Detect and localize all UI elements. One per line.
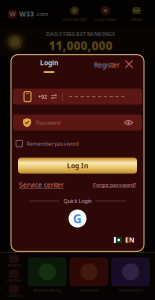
staticText: Password (36, 119, 60, 126)
button[interactable]: Money Coming (28, 257, 67, 293)
button[interactable]: Change country code (51, 94, 57, 100)
staticText: EN (125, 235, 134, 244)
button[interactable]: Rebate (121, 6, 152, 22)
button[interactable]: SPORTS (0, 254, 28, 268)
button[interactable]: Super Ace (70, 257, 108, 293)
button[interactable]: FISHING (0, 269, 28, 283)
staticText: .com (36, 10, 48, 18)
staticText: Remember password (26, 140, 78, 147)
button[interactable]: Service center (19, 181, 64, 189)
staticText: Rebate (131, 17, 142, 22)
staticText: G (73, 211, 82, 226)
staticText: Login (40, 58, 58, 67)
staticText: W33 (19, 10, 34, 18)
staticText: Log In (67, 161, 88, 170)
button[interactable]: Forgot password? (93, 181, 136, 189)
staticText: Money Coming (34, 287, 61, 293)
button[interactable]: Lucky wheel (90, 6, 121, 22)
button[interactable]: Show password (124, 120, 133, 126)
button[interactable]: CASINO (0, 284, 28, 298)
staticText: 11,000,000 (48, 38, 112, 53)
button[interactable]: Close (123, 55, 135, 79)
staticText: Live Chat 24/7 (62, 17, 86, 22)
staticText: Super Ace (80, 287, 98, 293)
button[interactable]: EN (114, 235, 134, 244)
button[interactable]: Fortune Gems (111, 257, 150, 293)
button[interactable]: Sign in with Google (68, 209, 86, 227)
staticText: CASINO (6, 293, 21, 298)
staticText: Quick Login (63, 197, 91, 205)
staticText: FISHING (6, 278, 21, 283)
button[interactable]: Live Chat 24/7 (59, 6, 90, 22)
staticText: SPORTS (7, 263, 20, 268)
staticText: DAILY FREE BET RANKINGS (46, 30, 115, 38)
button[interactable]: Remember password (11, 138, 144, 150)
staticText: Fortune Gems (118, 287, 143, 293)
button[interactable]: W (8, 9, 48, 18)
button[interactable]: Login (34, 55, 64, 79)
staticText: Forgot password? (93, 181, 136, 189)
staticText: W (9, 10, 16, 18)
staticText: Lucky wheel (95, 17, 116, 22)
button[interactable]: Log In (18, 158, 137, 174)
staticText: Service center (19, 181, 64, 189)
button[interactable]: Register (94, 55, 120, 79)
staticText: Register (94, 61, 120, 69)
staticText: +92 (38, 93, 47, 100)
